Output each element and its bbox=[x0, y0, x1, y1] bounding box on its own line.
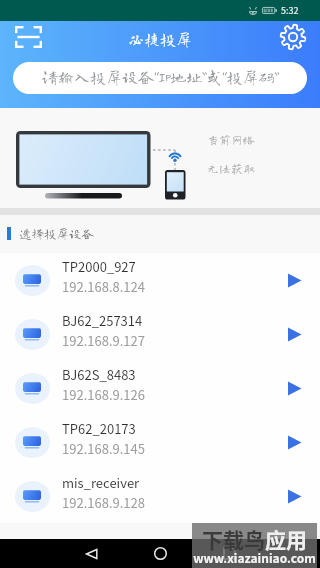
staticText: 请输入投屏设备“IP地址”或“投屏码” bbox=[42, 69, 279, 85]
staticText: 192.168.9.126 bbox=[62, 385, 145, 404]
button[interactable]: BJ62_257314 bbox=[0, 307, 320, 361]
staticText: 192.168.9.127 bbox=[62, 331, 145, 350]
button[interactable]: TP2000_927 bbox=[0, 253, 320, 307]
staticText: 192.168.9.145 bbox=[62, 439, 145, 458]
staticText: BJ62S_8483 bbox=[62, 365, 136, 384]
button[interactable]: mis_receiver bbox=[0, 469, 320, 523]
staticText: 192.168.9.128 bbox=[62, 493, 145, 512]
staticText: mis_receiver bbox=[62, 473, 140, 492]
button[interactable]: Settings bbox=[276, 25, 310, 59]
staticText: 选择投屏设备 bbox=[19, 227, 95, 240]
staticText: www.xiazainiao.com bbox=[192, 549, 317, 566]
button[interactable]: Cast to device bbox=[280, 374, 308, 402]
staticText: 无法获取 bbox=[207, 162, 256, 174]
button[interactable]: BJ62S_8483 bbox=[0, 361, 320, 415]
button[interactable]: 请输入投屏设备“IP地址”或“投屏码” bbox=[13, 62, 307, 94]
button[interactable]: Home bbox=[145, 539, 175, 568]
button[interactable]: Cast to device bbox=[280, 320, 308, 348]
staticText: 91 bbox=[265, 6, 273, 15]
staticText: 下载鸟 bbox=[202, 524, 265, 554]
button[interactable]: Cast to device bbox=[280, 482, 308, 510]
staticText: 当前网络 bbox=[207, 133, 256, 145]
button[interactable]: TP62_20173 bbox=[0, 415, 320, 469]
staticText: BJ62_257314 bbox=[62, 311, 143, 330]
staticText: 应用 bbox=[265, 524, 307, 554]
button[interactable]: Recent apps bbox=[214, 539, 244, 568]
staticText: TP2000_927 bbox=[62, 257, 136, 276]
button[interactable]: Scan code bbox=[11, 25, 45, 59]
button[interactable]: Cast to device bbox=[280, 428, 308, 456]
button[interactable]: Back bbox=[76, 539, 106, 568]
staticText: 5:32 bbox=[281, 4, 299, 17]
staticText: TP62_20173 bbox=[62, 419, 136, 438]
staticText: 192.168.8.124 bbox=[62, 277, 145, 296]
staticText: 必捷投屏 bbox=[128, 31, 193, 47]
button[interactable]: Cast to device bbox=[280, 266, 308, 294]
